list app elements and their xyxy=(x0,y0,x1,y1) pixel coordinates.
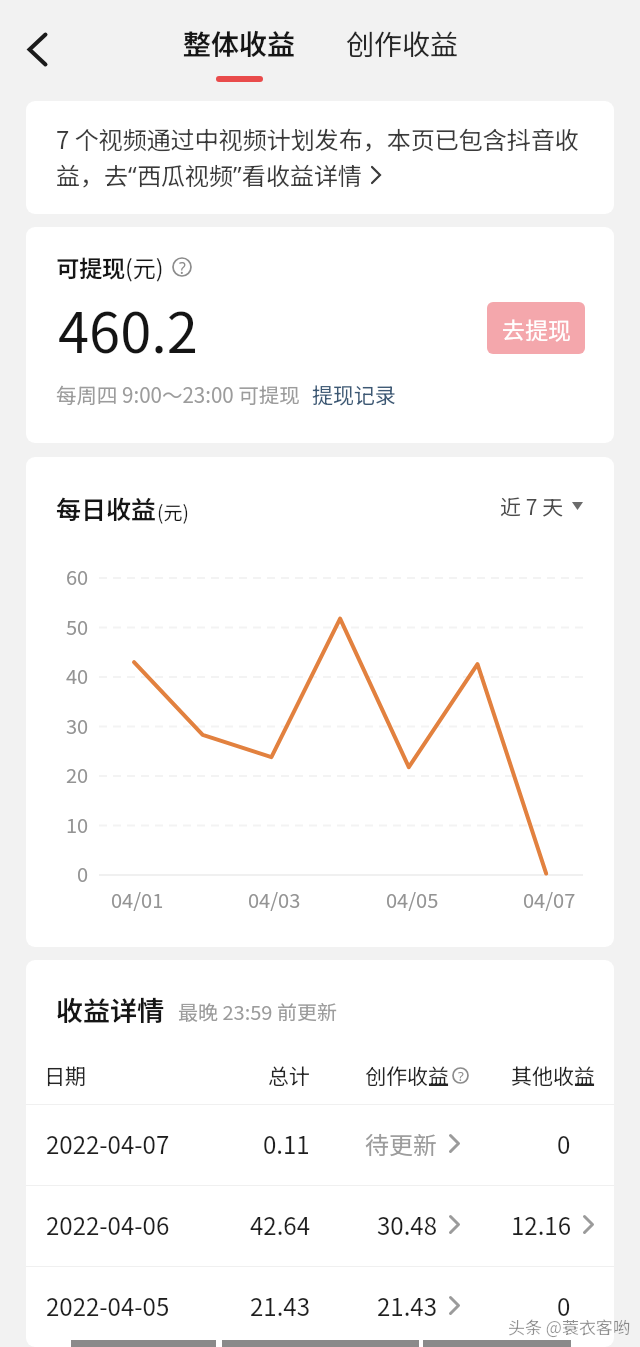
button[interactable]: 整体收益 xyxy=(183,23,296,82)
staticText: 7 个视频通过中视频计划发布，本页已包含抖音收 xyxy=(56,121,579,156)
staticText: 待更新 xyxy=(365,1126,437,1161)
staticText: 整体收益 xyxy=(183,23,296,64)
staticText: 12.16 xyxy=(511,1207,571,1242)
staticText: 2022-04-05 xyxy=(46,1288,170,1323)
staticText: 看收益详情 xyxy=(242,157,362,192)
staticText: (元) xyxy=(157,498,189,526)
staticText: 10 xyxy=(66,810,89,839)
button[interactable]: 去提现 xyxy=(487,302,585,354)
staticText: 其他收益 xyxy=(511,1060,595,1090)
button[interactable]: 提现记录 xyxy=(312,379,396,409)
staticText: 40 xyxy=(66,661,89,690)
staticText: 西瓜视频 xyxy=(137,157,233,192)
staticText: 42.64 xyxy=(250,1207,310,1242)
staticText: ? xyxy=(179,257,186,277)
staticText: 创作收益 xyxy=(346,23,459,64)
staticText: 收益详情 xyxy=(56,990,164,1029)
button[interactable]: 2022-04-06 xyxy=(26,1186,614,1266)
staticText: 每周四 9:00～23:00 可提现 xyxy=(56,379,300,409)
staticText: 30 xyxy=(66,711,89,740)
staticText: “ xyxy=(128,158,137,191)
staticText: 21.43 xyxy=(250,1288,310,1323)
staticText: 创作收益 xyxy=(365,1060,449,1090)
staticText: 日期 xyxy=(44,1060,86,1090)
staticText: 近 7 天 xyxy=(500,491,564,521)
staticText: 可提现 xyxy=(56,250,125,283)
staticText: 2022-04-07 xyxy=(46,1126,170,1161)
staticText: 提现记录 xyxy=(312,379,396,409)
staticText: 0 xyxy=(557,1126,571,1161)
button[interactable]: 2022-04-07 xyxy=(26,1105,614,1185)
staticText: (元) xyxy=(125,250,164,283)
button[interactable]: 2022-04-05 xyxy=(26,1267,614,1347)
staticText: 04/05 xyxy=(386,885,439,914)
staticText: 总计 xyxy=(268,1060,310,1090)
staticText: 2022-04-06 xyxy=(46,1207,170,1242)
staticText: 0.11 xyxy=(263,1126,310,1161)
staticText: ” xyxy=(233,158,242,191)
staticText: 最晚 23:59 前更新 xyxy=(178,997,337,1026)
staticText: 0 xyxy=(77,859,89,888)
staticText: 0 xyxy=(557,1288,571,1323)
staticText: 益，去 xyxy=(56,157,128,192)
staticText: 20 xyxy=(66,760,89,789)
staticText: 60 xyxy=(66,562,89,591)
staticText: ? xyxy=(458,1067,464,1084)
staticText: 每日收益 xyxy=(56,490,157,526)
staticText: 30.48 xyxy=(377,1207,437,1242)
staticText: 04/03 xyxy=(248,885,301,914)
staticText: 头条 @蓑衣客哟 xyxy=(508,1314,630,1339)
staticText: 50 xyxy=(66,612,89,641)
staticText: 460.2 xyxy=(58,288,198,369)
button[interactable]: Back xyxy=(14,26,60,72)
button[interactable]: 7 个视频通过中视频计划发布，本页已包含抖音收 xyxy=(26,101,614,214)
button[interactable]: 近 7 天 xyxy=(500,491,583,521)
button[interactable]: 创作收益 xyxy=(346,23,459,64)
staticText: 21.43 xyxy=(377,1288,437,1323)
staticText: 04/01 xyxy=(111,885,164,914)
staticText: 去提现 xyxy=(502,312,571,345)
staticText: 04/07 xyxy=(523,885,576,914)
